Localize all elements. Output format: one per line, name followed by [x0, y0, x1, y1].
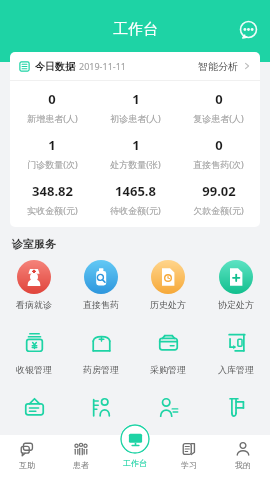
staticText: 1 [48, 136, 56, 154]
staticText: 工作台 [113, 20, 158, 39]
staticText: 0 [215, 90, 223, 108]
button[interactable]: 工作台 [108, 441, 162, 468]
button[interactable]: 学习 [162, 441, 216, 470]
staticText: 历史处方 [150, 299, 186, 310]
staticText: 今日数据 [35, 60, 75, 73]
button[interactable]: 消息 [235, 16, 261, 42]
button[interactable]: 入库管理 [202, 320, 270, 380]
button[interactable]: 今日数据 [10, 52, 260, 80]
staticText: 初诊患者(人) [110, 112, 161, 124]
button[interactable]: 工作台 [120, 424, 150, 454]
staticText: 我的 [235, 460, 251, 470]
staticText: 1465.8 [115, 182, 156, 200]
staticText: 实收金额(元) [27, 204, 78, 216]
staticText: 0 [215, 136, 223, 154]
button[interactable]: 供应商管理 [67, 385, 134, 435]
button[interactable]: 互助 [0, 441, 54, 470]
staticText: 门诊数量(次) [27, 158, 78, 170]
button[interactable]: 直接售药 [67, 255, 134, 315]
staticText: 99.02 [202, 182, 236, 200]
staticText: 学习 [181, 460, 197, 470]
button[interactable]: 患者 [54, 441, 108, 470]
button[interactable]: 用户管理 [134, 385, 202, 435]
button[interactable]: 尿检 [202, 385, 270, 435]
button[interactable]: 易盘存 [0, 385, 67, 435]
button[interactable]: 协定处方 [202, 255, 270, 315]
staticText: 欠款金额(元) [193, 204, 244, 216]
staticText: 智能分析 [198, 60, 238, 73]
button[interactable]: 收银管理 [0, 320, 67, 380]
button[interactable]: 历史处方 [134, 255, 202, 315]
staticText: 1 [132, 90, 140, 108]
staticText: 1 [132, 136, 140, 154]
staticText: 2019-11-11 [79, 60, 126, 72]
staticText: 348.82 [32, 182, 73, 200]
staticText: 直接售药(次) [193, 158, 244, 170]
staticText: 采购管理 [150, 364, 186, 375]
button[interactable]: 我的 [216, 441, 270, 470]
staticText: 协定处方 [218, 299, 254, 310]
staticText: 诊室服务 [12, 237, 56, 251]
staticText: 0 [48, 90, 56, 108]
staticText: 直接售药 [83, 299, 119, 310]
staticText: 互助 [19, 460, 35, 470]
staticText: 复诊患者(人) [193, 112, 244, 124]
staticText: 处方数量(张) [110, 158, 161, 170]
staticText: 工作台 [123, 458, 147, 468]
staticText: 看病就诊 [16, 299, 52, 310]
staticText: 患者 [73, 460, 89, 470]
button[interactable]: 看病就诊 [0, 255, 67, 315]
staticText: 新增患者(人) [27, 112, 78, 124]
staticText: 待收金额(元) [110, 204, 161, 216]
staticText: 收银管理 [16, 364, 52, 375]
button[interactable]: 药房管理 [67, 320, 134, 380]
staticText: 入库管理 [218, 364, 254, 375]
button[interactable]: 采购管理 [134, 320, 202, 380]
staticText: 药房管理 [83, 364, 119, 375]
